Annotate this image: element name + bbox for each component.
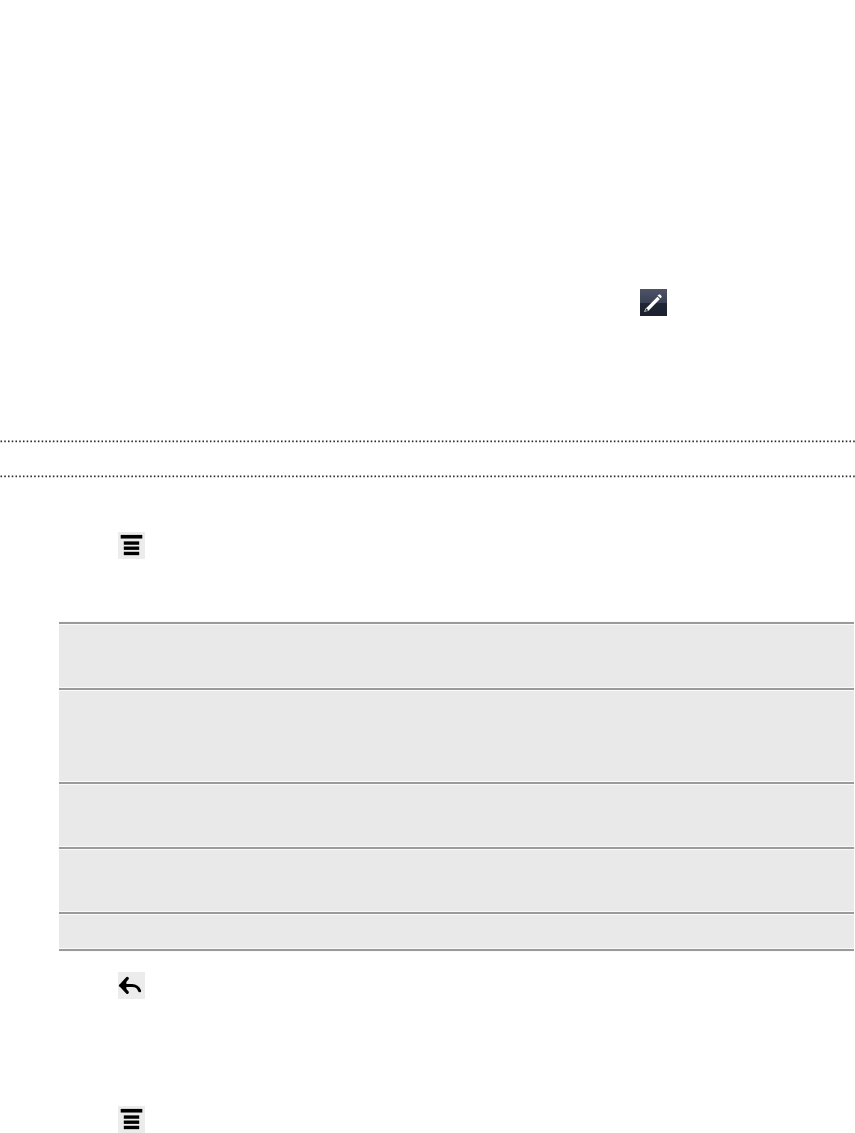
button[interactable]: Row 2 bbox=[59, 688, 854, 782]
button[interactable]: Row 3 bbox=[59, 782, 854, 847]
button[interactable]: List bbox=[118, 1106, 145, 1133]
button[interactable]: List bbox=[118, 532, 145, 559]
button[interactable]: Back bbox=[118, 972, 145, 999]
button[interactable]: Row 1 bbox=[59, 622, 854, 688]
button[interactable]: Row 5 bbox=[59, 912, 854, 949]
button[interactable]: Row 4 bbox=[59, 847, 854, 912]
button[interactable]: Edit bbox=[640, 289, 667, 316]
